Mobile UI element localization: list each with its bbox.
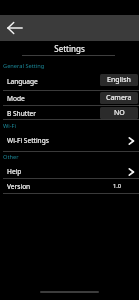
staticText: Other bbox=[3, 153, 19, 161]
button[interactable] bbox=[0, 178, 139, 193]
button[interactable] bbox=[0, 90, 139, 105]
staticText: Settings bbox=[54, 43, 85, 54]
staticText: NO bbox=[114, 108, 125, 118]
button[interactable]: NO bbox=[100, 107, 138, 119]
button[interactable] bbox=[0, 133, 139, 151]
button[interactable] bbox=[0, 163, 139, 178]
staticText: Wi-Fi bbox=[3, 122, 17, 130]
staticText: Version bbox=[7, 182, 31, 191]
staticText: Language bbox=[7, 77, 38, 86]
button[interactable] bbox=[0, 72, 139, 90]
button[interactable]: English bbox=[100, 74, 138, 86]
staticText: Help bbox=[7, 167, 22, 176]
staticText: Camera bbox=[106, 93, 132, 103]
staticText: 1.0 bbox=[113, 182, 122, 190]
button[interactable]: Back bbox=[2, 15, 28, 41]
button[interactable]: Open bbox=[125, 134, 139, 148]
staticText: General Setting bbox=[3, 62, 45, 70]
staticText: Wi-Fi Settings bbox=[7, 136, 49, 145]
staticText: Mode bbox=[7, 94, 25, 103]
button[interactable]: Camera bbox=[100, 92, 138, 104]
button[interactable] bbox=[0, 105, 139, 120]
button[interactable]: Open bbox=[125, 165, 139, 179]
staticText: English bbox=[107, 75, 131, 85]
staticText: B Shutter bbox=[7, 109, 36, 118]
